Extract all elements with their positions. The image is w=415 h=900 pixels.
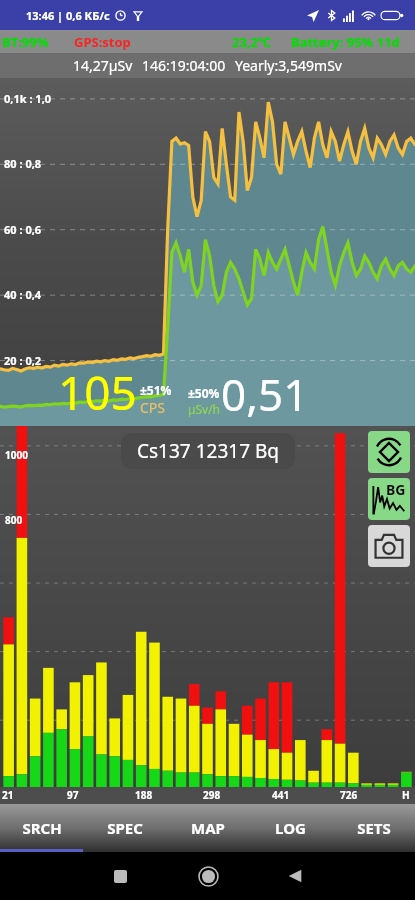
button[interactable]: Cs137 12317 Bq xyxy=(121,433,295,469)
button[interactable]: MAP xyxy=(166,804,249,852)
staticText: 20 : 0,2 xyxy=(4,353,42,368)
button[interactable]: Recent apps xyxy=(101,857,139,895)
button[interactable]: SRCH xyxy=(0,804,83,852)
staticText: 188 xyxy=(135,788,153,802)
staticText: 80 : 0,8 xyxy=(4,156,42,171)
staticText: 23,2℃ xyxy=(232,33,272,51)
staticText: 0,51 xyxy=(221,364,309,424)
staticText: SRCH xyxy=(22,818,62,838)
staticText: SETS xyxy=(357,818,391,838)
staticText: 298 xyxy=(203,788,221,802)
staticText: LOG xyxy=(275,818,306,838)
staticText: GPS:stop xyxy=(74,33,131,51)
staticText: SPEC xyxy=(107,818,143,838)
staticText: 146:19:04:00 xyxy=(142,56,226,75)
button[interactable]: SPEC xyxy=(83,804,166,852)
staticText: CPS xyxy=(140,398,166,417)
staticText: 21 xyxy=(2,788,14,802)
staticText: µSv/h xyxy=(188,401,221,417)
staticText: 60 : 0,6 xyxy=(4,222,42,237)
staticText: 105 xyxy=(58,361,137,424)
staticText: MAP xyxy=(191,818,225,838)
staticText: 800 xyxy=(5,513,23,527)
button[interactable]: Back xyxy=(276,857,314,895)
button[interactable]: Camera xyxy=(368,525,410,567)
staticText: Cs137 12317 Bq xyxy=(137,438,279,464)
staticText: 441 xyxy=(272,788,290,802)
staticText: 0,1k : 1,0 xyxy=(4,91,52,106)
staticText: BT:99% xyxy=(2,33,49,51)
button[interactable]: LOG xyxy=(249,804,332,852)
staticText: 13:46 | 0,6 КБ/с xyxy=(26,8,110,23)
staticText: ±51% xyxy=(140,382,172,398)
staticText: BG xyxy=(386,480,406,499)
staticText: Battery: 95% 11d xyxy=(291,33,400,51)
staticText: 14,27µSv xyxy=(73,56,133,75)
staticText: H xyxy=(402,788,410,802)
staticText: 97 xyxy=(67,788,79,802)
staticText: ±50% xyxy=(188,385,220,401)
staticText: Yearly:3,549mSv xyxy=(235,56,342,75)
button[interactable]: Home xyxy=(189,857,227,895)
button[interactable]: Background spectrum xyxy=(368,478,410,520)
button[interactable]: SETS xyxy=(332,804,415,852)
staticText: 726 xyxy=(340,788,358,802)
staticText: 1000 xyxy=(5,448,28,462)
button[interactable]: Rotate screen xyxy=(368,431,410,473)
staticText: 40 : 0,4 xyxy=(4,287,42,302)
